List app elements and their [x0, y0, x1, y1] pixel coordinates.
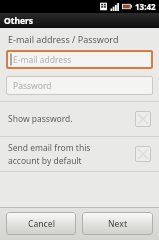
staticText: Password — [13, 80, 52, 92]
staticText: Others — [4, 15, 34, 27]
other: Toggle checkbox — [135, 111, 151, 127]
button[interactable]: Next — [82, 212, 153, 235]
button[interactable]: E-mail address — [6, 50, 153, 69]
staticText: account by default — [8, 155, 82, 167]
staticText: Send email from this — [8, 142, 91, 154]
staticText: 13:42 — [135, 1, 156, 12]
staticText: Cancel — [28, 218, 55, 230]
button[interactable]: Show password. — [0, 102, 159, 136]
staticText: E-mail address / Password — [8, 33, 119, 45]
button[interactable]: Cancel — [6, 212, 76, 235]
other: Toggle checkbox — [135, 146, 151, 162]
staticText: Show password. — [8, 113, 73, 125]
staticText: Next — [108, 218, 128, 230]
staticText: E-mail address — [13, 54, 72, 66]
button[interactable]: Send email from this — [0, 137, 159, 171]
button[interactable]: Password — [6, 76, 153, 95]
